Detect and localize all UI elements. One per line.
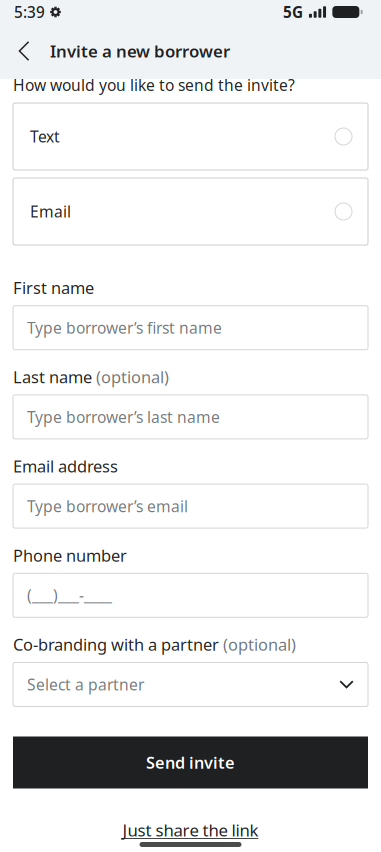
staticText: How would you like to send the invite?	[13, 74, 295, 96]
staticText: Type borrower’s email	[27, 495, 188, 517]
staticText: Co-branding with a partner	[13, 633, 219, 656]
staticText: Last name	[13, 366, 92, 388]
staticText: Email	[30, 201, 71, 222]
staticText: (optional)	[223, 633, 296, 656]
staticText: (optional)	[96, 366, 169, 388]
staticText: 5G	[283, 2, 303, 22]
button[interactable]: Type borrower’s email	[13, 484, 368, 528]
button[interactable]: Text	[13, 103, 368, 170]
staticText: Send invite	[146, 751, 235, 774]
staticText: Select a partner	[27, 674, 144, 695]
staticText: Type borrower’s last name	[27, 406, 220, 427]
staticText: 5:39	[14, 2, 45, 22]
staticText: Text	[30, 126, 60, 147]
button[interactable]: Type borrower’s first name	[13, 306, 368, 350]
button[interactable]: Email	[13, 178, 368, 245]
button[interactable]: Just share the link	[122, 818, 258, 841]
staticText: Invite a new borrower	[50, 40, 230, 62]
button[interactable]: (___)___-____	[13, 573, 368, 617]
button[interactable]: Back	[9, 30, 39, 72]
staticText: Type borrower’s first name	[27, 317, 222, 338]
button[interactable]: Send invite	[13, 736, 368, 788]
staticText: Just share the link	[122, 818, 258, 841]
staticText: Email address	[13, 455, 118, 477]
staticText: First name	[13, 276, 94, 299]
staticText: Phone number	[13, 544, 127, 566]
staticText: (___)___-____	[27, 585, 112, 606]
button[interactable]: Type borrower’s last name	[13, 395, 368, 439]
button[interactable]: Select a partner	[13, 662, 368, 706]
